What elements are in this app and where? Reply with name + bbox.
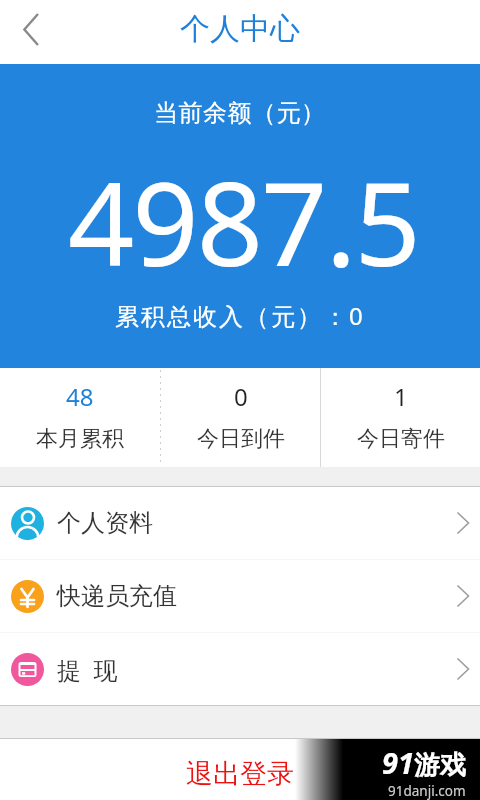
staticText: 48	[66, 380, 94, 412]
staticText: 今日到件	[197, 425, 285, 453]
staticText: 当前余额（元）	[154, 98, 326, 128]
staticText: 91	[382, 743, 414, 782]
button[interactable]: 快递员充值	[0, 560, 480, 632]
staticText: 今日寄件	[357, 425, 445, 453]
staticText: 个人中心	[180, 10, 300, 48]
staticText: 0	[234, 380, 248, 412]
staticText: 游戏	[414, 749, 466, 782]
staticText: 个人资料	[57, 508, 153, 538]
staticText: 4987.5	[68, 142, 419, 300]
button[interactable]: 退出登录	[186, 757, 294, 791]
staticText: 退出登录	[186, 757, 294, 791]
button[interactable]: 48	[0, 368, 160, 467]
staticText: 91danji.com	[388, 782, 466, 800]
button[interactable]	[0, 0, 60, 64]
staticText: 提 现	[57, 653, 118, 686]
button[interactable]: 提 现	[0, 633, 480, 705]
button[interactable]: 0	[161, 368, 320, 467]
button[interactable]: 1	[321, 368, 480, 467]
staticText: 累积总收入（元）：0	[115, 299, 365, 332]
staticText: 快递员充值	[57, 581, 177, 611]
staticText: 1	[394, 380, 408, 412]
button[interactable]: 个人资料	[0, 487, 480, 559]
staticText: 本月累积	[36, 425, 124, 453]
